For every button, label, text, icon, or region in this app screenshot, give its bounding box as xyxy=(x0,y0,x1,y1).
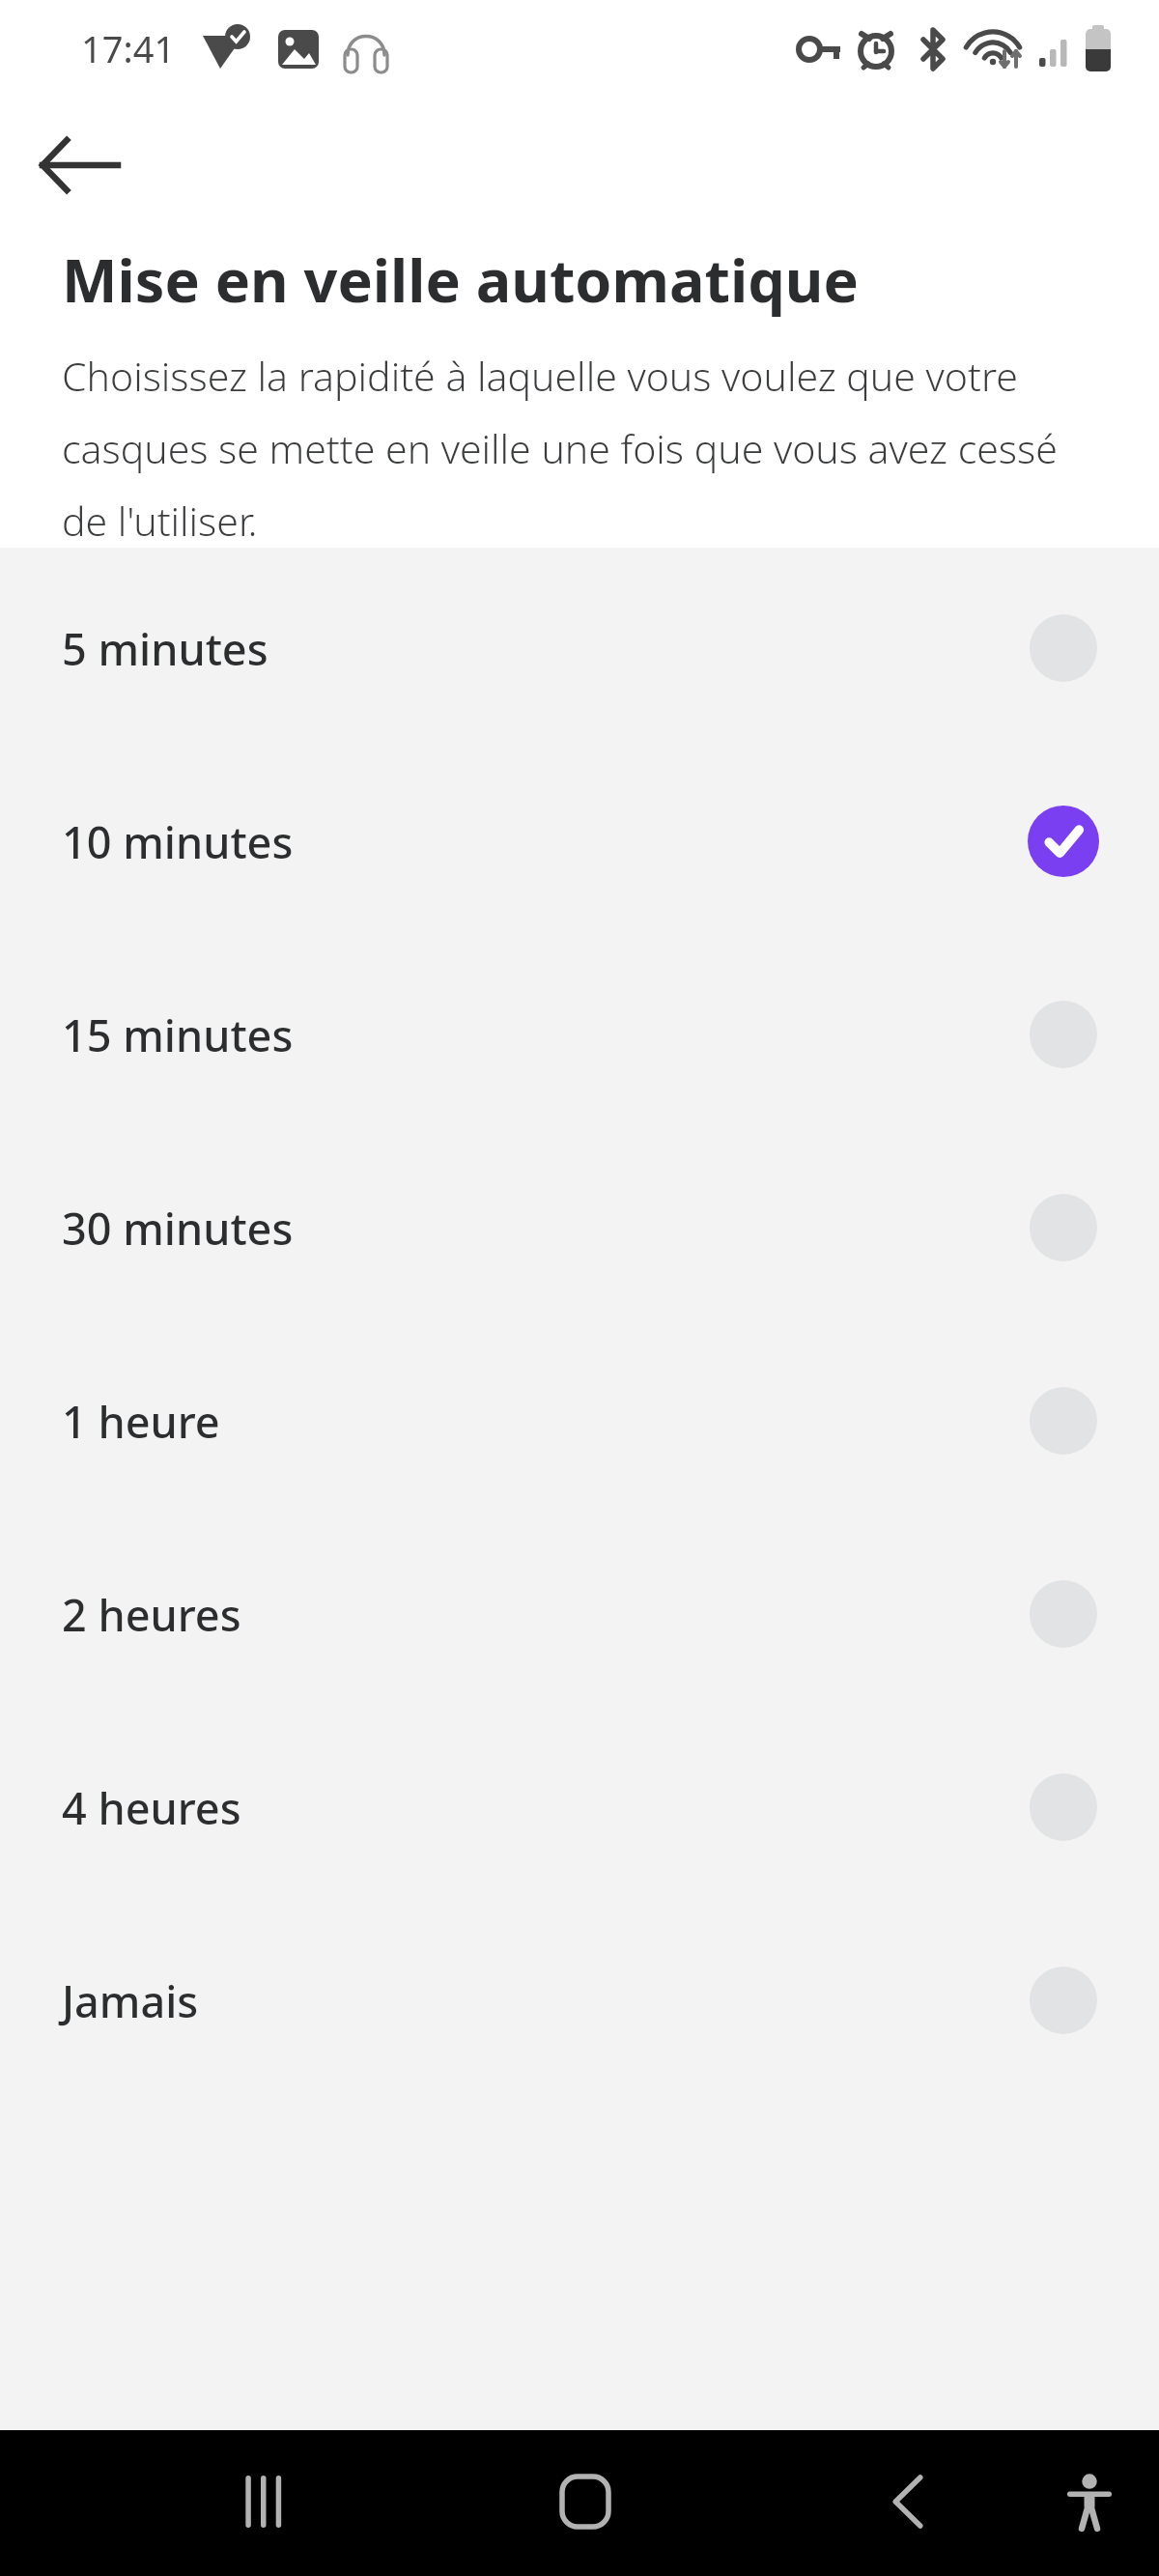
button[interactable]: 4 heures xyxy=(0,1711,1159,1904)
staticText: 17:41 xyxy=(81,23,176,73)
staticText: 1 heure xyxy=(62,1392,220,1451)
staticText: 4 heures xyxy=(62,1778,241,1837)
button[interactable]: 15 minutes xyxy=(0,938,1159,1131)
button[interactable]: Jamais xyxy=(0,1904,1159,2097)
staticText: Jamais xyxy=(62,1971,199,2030)
staticText: 10 minutes xyxy=(62,812,294,871)
staticText: 2 heures xyxy=(62,1585,241,1644)
button[interactable]: Back xyxy=(840,2444,975,2560)
button[interactable]: Home xyxy=(518,2444,653,2560)
staticText: Mise en veille automatique xyxy=(62,240,859,320)
button[interactable]: 30 minutes xyxy=(0,1131,1159,1324)
button[interactable]: 10 minutes xyxy=(0,745,1159,938)
button[interactable]: Accessibility xyxy=(1024,2444,1154,2560)
button[interactable]: Back xyxy=(19,112,139,218)
button[interactable]: 2 heures xyxy=(0,1517,1159,1711)
staticText: 5 minutes xyxy=(62,619,269,678)
button[interactable]: 5 minutes xyxy=(0,552,1159,745)
staticText: Choisissez la rapidité à laquelle vous v… xyxy=(62,349,1113,548)
button[interactable]: 1 heure xyxy=(0,1324,1159,1517)
button[interactable]: Recents xyxy=(193,2444,328,2560)
staticText: 15 minutes xyxy=(62,1005,294,1064)
staticText: 30 minutes xyxy=(62,1199,294,1258)
